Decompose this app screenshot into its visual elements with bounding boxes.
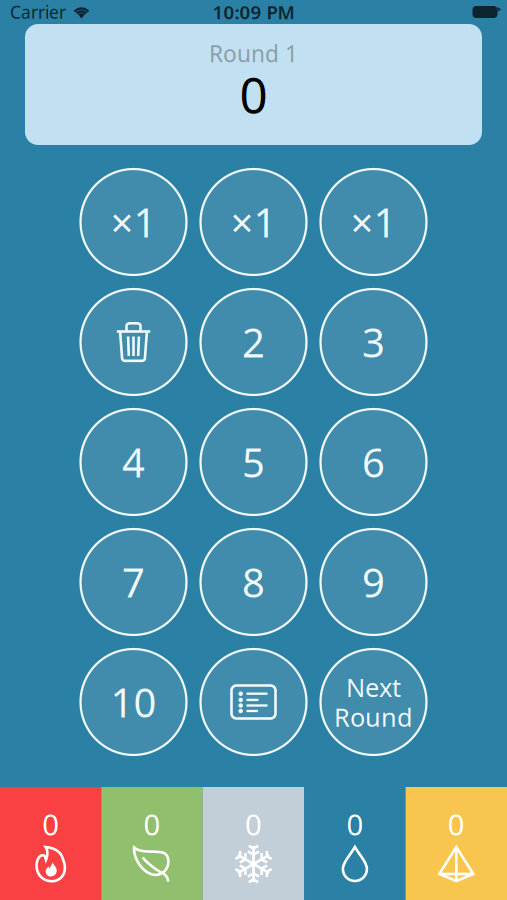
button[interactable]: 9	[320, 529, 426, 635]
staticText: ×1	[230, 195, 276, 248]
staticText: ×1	[110, 195, 156, 248]
staticText: 9	[362, 555, 385, 608]
button[interactable]: Score log	[200, 649, 306, 755]
button[interactable]: ×1	[320, 169, 426, 275]
button[interactable]: 2	[200, 289, 306, 395]
button[interactable]: ×1	[80, 169, 186, 275]
button[interactable]: 4	[80, 409, 186, 515]
button[interactable]: Light: 0	[406, 787, 507, 900]
staticText: 6	[362, 435, 385, 488]
staticText: 4	[122, 435, 145, 488]
button[interactable]: Next	[320, 649, 426, 755]
staticText: Round 1	[209, 38, 298, 68]
button[interactable]: Leaf: 0	[101, 787, 203, 900]
staticText: 0	[42, 804, 59, 843]
staticText: 10	[110, 675, 156, 728]
button[interactable]: 5	[200, 409, 306, 515]
staticText: 0	[346, 804, 363, 843]
staticText: 0	[448, 804, 465, 843]
button[interactable]: 10	[80, 649, 186, 755]
staticText: 3	[362, 315, 385, 368]
button[interactable]: Water: 0	[304, 787, 406, 900]
staticText: 5	[242, 435, 265, 488]
staticText: 2	[242, 315, 265, 368]
staticText: 8	[242, 555, 265, 608]
button[interactable]: 3	[320, 289, 426, 395]
button[interactable]: Fire: 0	[0, 787, 101, 900]
staticText: ×1	[350, 195, 396, 248]
staticText: 0	[144, 804, 161, 843]
button[interactable]: 7	[80, 529, 186, 635]
staticText: Carrier	[10, 0, 66, 23]
staticText: 0	[239, 61, 267, 127]
button[interactable]: 6	[320, 409, 426, 515]
button[interactable]: Clear	[80, 289, 186, 395]
staticText: 0	[245, 804, 262, 843]
staticText: Next	[346, 670, 401, 704]
staticText: 10:09 PM	[212, 0, 294, 24]
button[interactable]: 8	[200, 529, 306, 635]
button[interactable]: Ice: 0	[203, 787, 304, 900]
button[interactable]: ×1	[200, 169, 306, 275]
staticText: Round	[334, 700, 413, 734]
staticText: 7	[122, 555, 145, 608]
